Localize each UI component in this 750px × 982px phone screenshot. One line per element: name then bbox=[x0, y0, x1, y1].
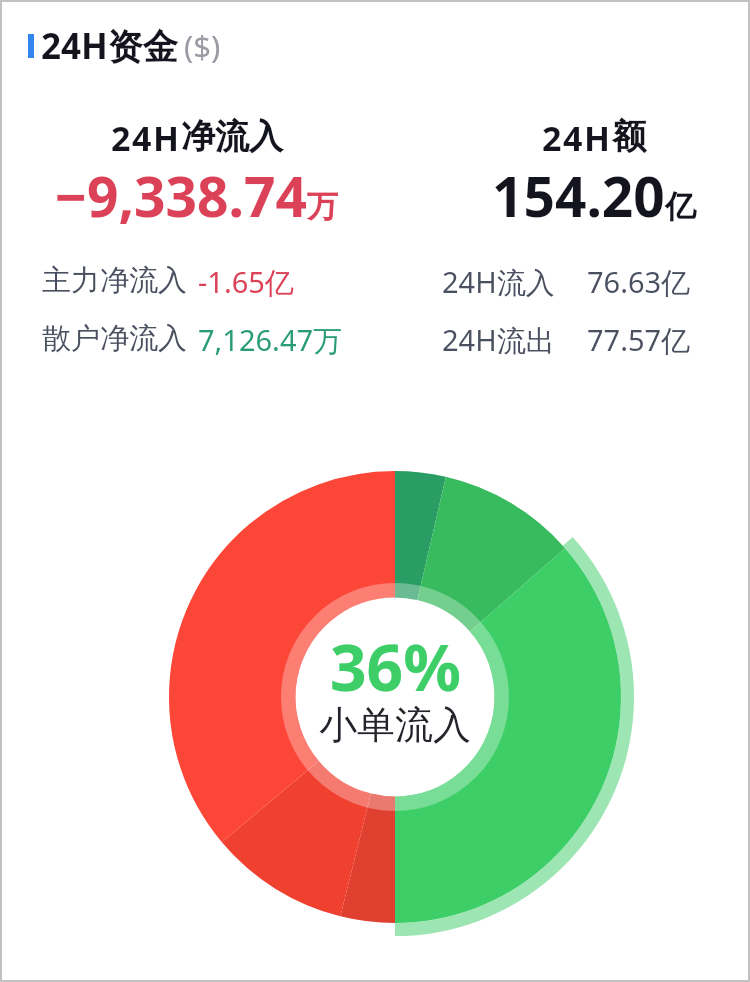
button[interactable]: 24H bbox=[418, 112, 750, 233]
staticText: 36% bbox=[330, 623, 461, 710]
staticText: 小单流入 bbox=[319, 701, 471, 749]
button[interactable]: 24H 资金流向占比环形图 bbox=[156, 458, 634, 936]
button[interactable]: 主力净流入 bbox=[42, 262, 342, 298]
staticText: 24H资金 bbox=[41, 22, 178, 70]
staticText: 主力净流入 bbox=[42, 262, 187, 298]
staticText: 7,126.47万 bbox=[198, 320, 343, 356]
button[interactable]: 24H流入 bbox=[442, 262, 702, 298]
button[interactable]: 散户净流入 bbox=[42, 320, 362, 356]
staticText: 24H流入 bbox=[442, 262, 555, 298]
staticText: 76.63亿 bbox=[587, 262, 691, 298]
staticText: 24H bbox=[542, 115, 612, 161]
staticText: 散户净流入 bbox=[42, 320, 187, 356]
staticText: 77.57亿 bbox=[587, 320, 691, 356]
button[interactable]: 24H bbox=[0, 112, 393, 233]
staticText: 24H流出 bbox=[442, 320, 555, 356]
staticText: 亿 bbox=[665, 187, 696, 226]
staticText: 万 bbox=[307, 187, 338, 226]
button[interactable]: 24H资金 bbox=[28, 22, 221, 70]
staticText: ($) bbox=[184, 25, 221, 67]
staticText: 154.20 bbox=[492, 158, 665, 233]
staticText: 净流入 bbox=[181, 115, 283, 158]
staticText: 24H bbox=[111, 115, 181, 161]
staticText: 额 bbox=[612, 115, 646, 158]
staticText: -1.65亿 bbox=[198, 262, 294, 298]
button[interactable]: 24H流出 bbox=[442, 320, 702, 356]
staticText: −9,338.74 bbox=[55, 158, 307, 233]
